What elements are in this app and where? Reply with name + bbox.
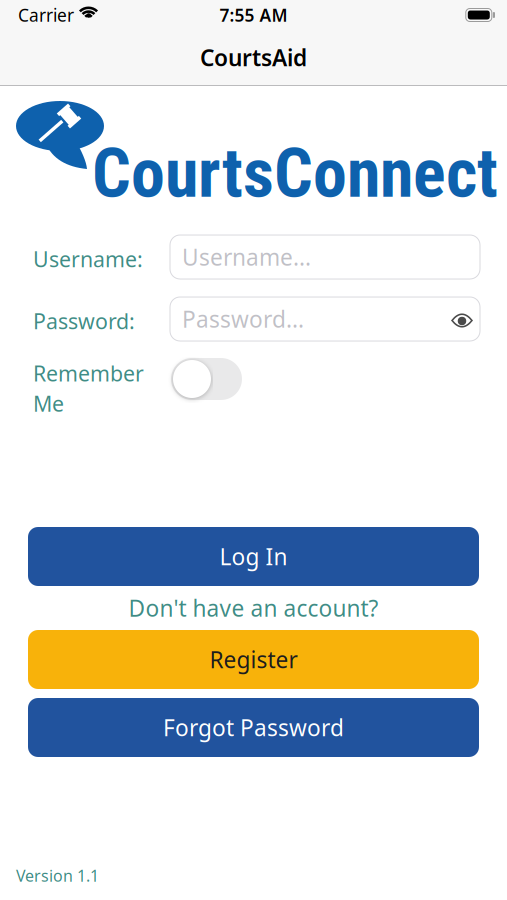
staticText: Username... — [182, 242, 311, 272]
staticText: Version 1.1 — [16, 865, 99, 886]
staticText: Remember — [33, 359, 144, 387]
staticText: Forgot Password — [163, 712, 344, 742]
staticText: Me — [33, 389, 64, 418]
staticText: Password: — [33, 307, 135, 335]
button[interactable]: Remember Me — [171, 358, 242, 400]
staticText: CourtsConnect — [92, 134, 498, 213]
button[interactable]: Log In — [28, 527, 479, 586]
button[interactable]: Forgot Password — [28, 698, 479, 757]
button[interactable]: Don't have an account? — [0, 594, 507, 622]
button[interactable]: Show password — [451, 312, 480, 326]
button[interactable]: Password... — [170, 297, 480, 341]
button[interactable]: Username... — [170, 235, 480, 279]
staticText: 7:55 AM — [219, 3, 287, 26]
staticText: Username: — [33, 245, 143, 273]
staticText: Carrier — [18, 3, 74, 26]
staticText: Password... — [182, 304, 304, 334]
button[interactable]: Register — [28, 630, 479, 689]
staticText: Log In — [219, 541, 287, 571]
staticText: Don't have an account? — [128, 593, 378, 623]
staticText: Register — [209, 644, 297, 674]
staticText: CourtsAid — [200, 42, 307, 72]
